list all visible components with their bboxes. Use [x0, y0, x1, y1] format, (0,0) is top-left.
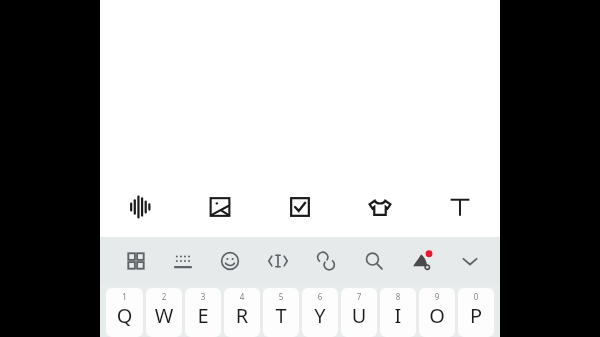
staticText: 4	[224, 291, 260, 302]
button[interactable]: Clipboard	[254, 237, 302, 285]
staticText: O	[419, 302, 455, 329]
button[interactable]: Emoji	[206, 237, 254, 285]
button[interactable]: Poll	[260, 176, 340, 237]
staticText: U	[341, 302, 377, 329]
staticText: E	[185, 302, 221, 329]
button[interactable]: 3	[185, 288, 221, 337]
button[interactable]: Text format	[420, 176, 500, 237]
staticText: 5	[263, 291, 299, 302]
button[interactable]: Keyboard layout	[159, 237, 206, 285]
staticText: 8	[380, 291, 416, 302]
button[interactable]: Voice message	[100, 176, 180, 237]
button[interactable]: Sticker pack	[340, 176, 420, 237]
staticText: I	[380, 302, 416, 329]
staticText: 7	[341, 291, 377, 302]
button[interactable]: Stickers	[398, 237, 446, 285]
staticText: 0	[458, 291, 494, 302]
staticText: Y	[302, 302, 338, 329]
staticText: 2	[146, 291, 182, 302]
staticText: 6	[302, 291, 338, 302]
button[interactable]: Image	[180, 176, 260, 237]
staticText: T	[263, 302, 299, 329]
staticText: W	[146, 302, 182, 329]
button[interactable]: 8	[380, 288, 416, 337]
button[interactable]: 0	[458, 288, 494, 337]
button[interactable]: 1	[106, 288, 143, 337]
button[interactable]: GIF	[302, 237, 350, 285]
button[interactable]: 2	[146, 288, 182, 337]
button[interactable]: Search	[350, 237, 398, 285]
staticText: 1	[106, 291, 143, 302]
button[interactable]: 9	[419, 288, 455, 337]
staticText: P	[458, 302, 494, 329]
button[interactable]: Collapse	[446, 237, 494, 285]
staticText: Q	[106, 302, 143, 329]
button[interactable]: 5	[263, 288, 299, 337]
staticText: 3	[185, 291, 221, 302]
button[interactable]: 4	[224, 288, 260, 337]
button[interactable]: 7	[341, 288, 377, 337]
staticText: R	[224, 302, 260, 329]
button[interactable]: Apps	[112, 237, 159, 285]
staticText: 9	[419, 291, 455, 302]
button[interactable]: 6	[302, 288, 338, 337]
